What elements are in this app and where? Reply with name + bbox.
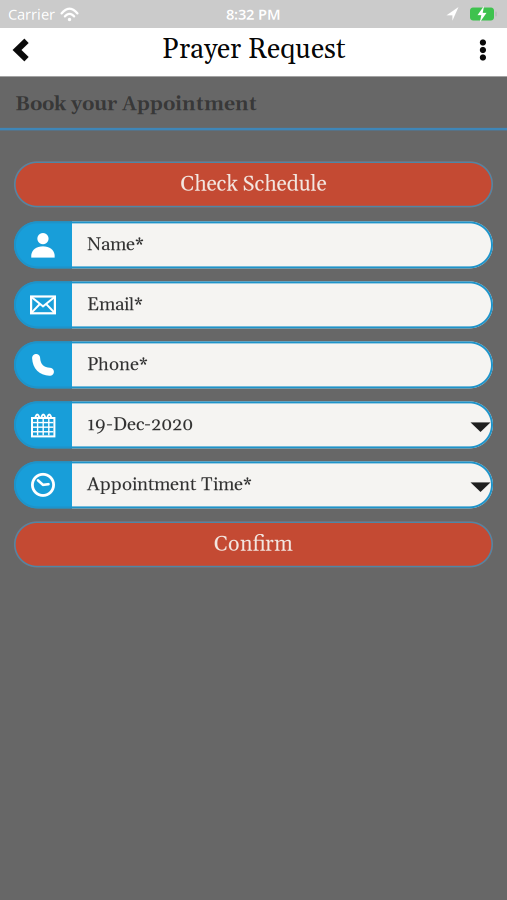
- staticText: Book your Appointment: [15, 92, 257, 117]
- staticText: Prayer Request: [162, 33, 345, 67]
- button[interactable]: 19-Dec-2020: [14, 401, 493, 448]
- button[interactable]: More options: [468, 28, 507, 72]
- staticText: Name*: [87, 233, 144, 257]
- staticText: Appointment Time*: [87, 473, 252, 497]
- button[interactable]: Back: [0, 28, 40, 72]
- staticText: Carrier: [8, 4, 55, 24]
- staticText: Check Schedule: [180, 171, 326, 198]
- button[interactable]: Confirm: [14, 521, 493, 567]
- button[interactable]: Phone*: [14, 341, 493, 388]
- button[interactable]: Check Schedule: [14, 161, 493, 207]
- staticText: Email*: [87, 293, 143, 317]
- staticText: 19-Dec-2020: [87, 413, 193, 437]
- button[interactable]: Appointment Time*: [14, 461, 493, 508]
- button[interactable]: Email*: [14, 281, 493, 328]
- button[interactable]: Name*: [14, 221, 493, 268]
- staticText: Phone*: [87, 353, 148, 377]
- staticText: Confirm: [214, 531, 293, 558]
- staticText: 8:32 PM: [226, 4, 281, 24]
